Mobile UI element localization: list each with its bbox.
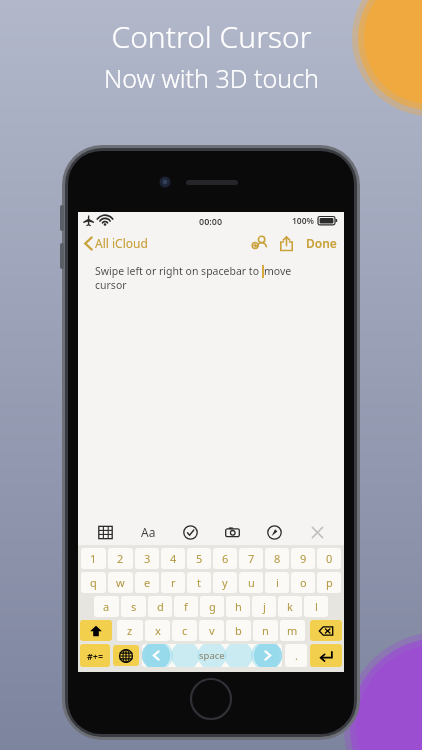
button[interactable]: 6 [213, 548, 237, 569]
staticText: 100% [292, 215, 315, 227]
button[interactable]: l [304, 596, 328, 617]
staticText: b [235, 623, 242, 638]
button[interactable]: b [226, 620, 251, 641]
button[interactable]: Return [310, 644, 342, 667]
button[interactable]: . [285, 644, 307, 667]
button[interactable]: h [226, 596, 250, 617]
button[interactable]: 0 [317, 548, 341, 569]
staticText: v [209, 623, 215, 638]
staticText: k [287, 599, 293, 614]
staticText: j [263, 599, 266, 614]
staticText: m [287, 623, 298, 638]
staticText: c [182, 623, 188, 638]
button[interactable]: c [172, 620, 197, 641]
button[interactable]: #+= [80, 644, 110, 667]
button[interactable]: Markup [259, 519, 289, 545]
button[interactable]: 1 [81, 548, 106, 569]
staticText: Swipe left or right on spacebar to [95, 264, 262, 278]
staticText: t [197, 575, 201, 590]
button[interactable]: 8 [265, 548, 289, 569]
staticText: n [262, 623, 269, 638]
button[interactable]: 2 [108, 548, 133, 569]
staticText: 8 [274, 551, 281, 566]
staticText: 5 [196, 551, 203, 566]
staticText: #+= [87, 650, 104, 662]
staticText: o [300, 575, 307, 590]
button[interactable]: j [252, 596, 276, 617]
button[interactable]: Close keyboard [302, 519, 332, 545]
staticText: 3 [144, 551, 151, 566]
button[interactable]: Emoji / language [113, 645, 139, 666]
button[interactable]: r [161, 572, 185, 593]
staticText: e [144, 575, 151, 590]
staticText: s [131, 599, 137, 614]
staticText: 4 [170, 551, 177, 566]
staticText: 00:00 [199, 215, 223, 227]
button[interactable]: y [213, 572, 237, 593]
button[interactable]: 3 [135, 548, 159, 569]
staticText: 0 [326, 551, 333, 566]
staticText: p [326, 575, 333, 590]
button[interactable]: 4 [161, 548, 185, 569]
button[interactable]: space [142, 644, 282, 667]
button[interactable]: z [117, 620, 143, 641]
button[interactable]: v [199, 620, 224, 641]
staticText: i [276, 575, 279, 590]
staticText: 6 [222, 551, 229, 566]
staticText: q [90, 575, 97, 590]
button[interactable]: d [148, 596, 172, 617]
staticText: move [264, 264, 292, 278]
staticText: h [235, 599, 242, 614]
button[interactable]: f [174, 596, 198, 617]
button[interactable]: Share [273, 229, 299, 257]
staticText: Control Cursor [111, 16, 312, 57]
staticText: Now with 3D touch [104, 61, 319, 95]
staticText: u [248, 575, 255, 590]
staticText: 9 [300, 551, 307, 566]
button[interactable]: e [135, 572, 159, 593]
staticText: 1 [90, 551, 97, 566]
button[interactable]: t [187, 572, 211, 593]
button[interactable]: Add people [247, 229, 273, 257]
staticText: All iCloud [95, 235, 148, 251]
button[interactable]: i [265, 572, 289, 593]
staticText: space [199, 649, 225, 662]
button[interactable]: Done [299, 229, 344, 257]
staticText: w [116, 575, 125, 590]
button[interactable]: s [121, 596, 146, 617]
button[interactable]: a [94, 596, 119, 617]
button[interactable]: 7 [239, 548, 263, 569]
staticText: d [157, 599, 164, 614]
button[interactable]: Table [90, 519, 120, 545]
button[interactable]: 9 [291, 548, 315, 569]
staticText: y [222, 575, 228, 590]
button[interactable]: Shift [80, 620, 112, 641]
button[interactable]: Checklist [175, 519, 205, 545]
button[interactable]: k [278, 596, 302, 617]
staticText: r [171, 575, 176, 590]
button[interactable]: 5 [187, 548, 211, 569]
staticText: g [209, 599, 216, 614]
staticText: 7 [248, 551, 255, 566]
button[interactable]: n [253, 620, 278, 641]
button[interactable]: Camera [217, 519, 247, 545]
button[interactable]: p [317, 572, 341, 593]
button[interactable]: Aa [133, 519, 163, 545]
button[interactable]: o [291, 572, 315, 593]
staticText: z [127, 623, 133, 638]
button[interactable]: g [200, 596, 224, 617]
staticText: Aa [141, 524, 156, 540]
button[interactable]: m [280, 620, 305, 641]
button[interactable]: w [108, 572, 133, 593]
button[interactable]: q [81, 572, 106, 593]
staticText: 2 [117, 551, 124, 566]
button[interactable]: All iCloud [78, 229, 154, 257]
button[interactable]: x [145, 620, 170, 641]
staticText: Done [306, 235, 337, 251]
button[interactable]: u [239, 572, 263, 593]
staticText: f [184, 599, 188, 614]
staticText: a [103, 599, 110, 614]
button[interactable]: Backspace [310, 620, 342, 641]
staticText: cursor [95, 278, 127, 292]
staticText: . [295, 648, 298, 663]
